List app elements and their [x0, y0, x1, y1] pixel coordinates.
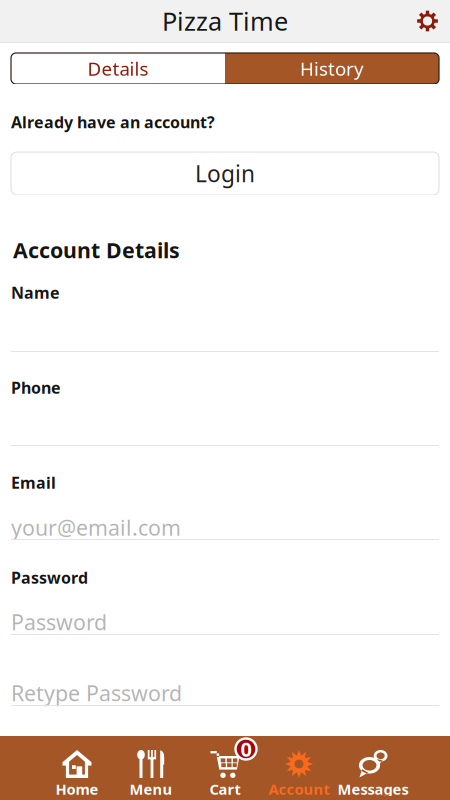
- staticText: Password: [11, 567, 88, 588]
- staticText: Email: [11, 472, 56, 493]
- button[interactable]: Settings: [417, 10, 450, 31]
- button[interactable]: Home: [40, 736, 114, 800]
- staticText: Menu: [129, 779, 172, 799]
- staticText: Login: [195, 158, 255, 188]
- staticText: Name: [11, 282, 60, 303]
- staticText: Password: [11, 608, 107, 636]
- staticText: Retype Password: [11, 679, 182, 707]
- button[interactable]: History: [225, 53, 439, 84]
- button[interactable]: Login: [11, 152, 439, 195]
- staticText: Account Details: [13, 236, 180, 264]
- staticText: your@email.com: [11, 513, 181, 542]
- button[interactable]: Menu: [114, 736, 188, 800]
- staticText: Cart: [209, 779, 240, 799]
- button[interactable]: 0: [188, 736, 262, 800]
- staticText: History: [300, 56, 364, 81]
- staticText: Already have an account?: [11, 111, 215, 133]
- button[interactable]: Account: [262, 736, 336, 800]
- staticText: Details: [87, 56, 148, 81]
- staticText: Account: [268, 779, 329, 799]
- staticText: Phone: [11, 377, 61, 398]
- staticText: Messages: [337, 779, 408, 799]
- staticText: Pizza Time: [162, 4, 288, 38]
- staticText: 0: [240, 736, 251, 762]
- button[interactable]: Details: [11, 53, 225, 84]
- button[interactable]: Messages: [336, 736, 410, 800]
- staticText: Home: [55, 779, 98, 799]
